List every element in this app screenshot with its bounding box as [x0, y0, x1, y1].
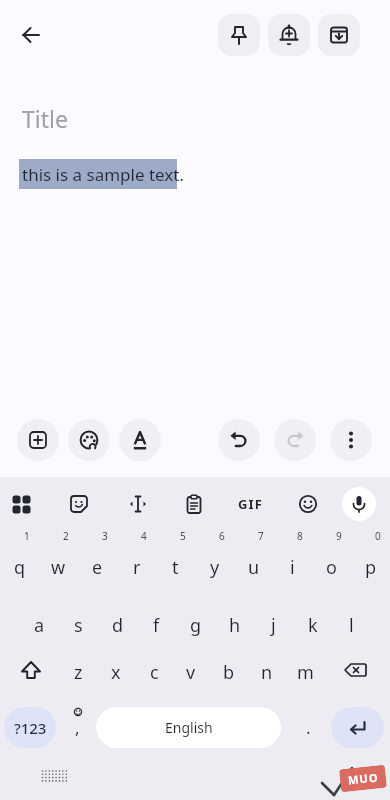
staticText: j	[271, 613, 276, 638]
staticText: 3	[102, 529, 108, 543]
button[interactable]: i	[273, 543, 312, 591]
staticText: v	[186, 660, 196, 685]
button[interactable]	[274, 419, 316, 461]
button[interactable]: d	[98, 601, 137, 649]
staticText: t	[172, 555, 179, 580]
button[interactable]	[0, 482, 43, 526]
staticText: e	[92, 555, 103, 580]
button[interactable]: GIF	[229, 482, 273, 526]
button[interactable]	[331, 707, 384, 748]
staticText: 0	[375, 529, 381, 543]
button[interactable]: a	[20, 601, 59, 649]
button[interactable]	[14, 18, 48, 52]
staticText: 7	[258, 529, 264, 543]
staticText: MUO	[347, 769, 380, 788]
button[interactable]	[68, 419, 110, 461]
button[interactable]: g	[176, 601, 215, 649]
staticText: g	[190, 613, 202, 638]
button[interactable]: m	[286, 648, 324, 696]
button[interactable]	[342, 487, 376, 521]
button[interactable]: q	[0, 543, 39, 591]
button[interactable]: z	[59, 648, 97, 696]
staticText: y	[210, 555, 220, 580]
staticText: English	[165, 718, 213, 737]
staticText: Title	[22, 103, 68, 134]
staticText: o	[326, 555, 337, 580]
staticText: 5	[180, 529, 186, 543]
button[interactable]: t	[156, 543, 195, 591]
staticText: k	[308, 613, 318, 638]
staticText: x	[111, 660, 121, 685]
staticText: r	[133, 555, 141, 580]
staticText: u	[248, 555, 260, 580]
staticText: 1	[24, 529, 30, 543]
button[interactable]: k	[293, 601, 332, 649]
button[interactable]: w	[39, 543, 78, 591]
staticText: 8	[297, 529, 303, 543]
staticText: n	[261, 660, 273, 685]
button[interactable]	[286, 482, 330, 526]
button[interactable]	[58, 702, 96, 752]
button[interactable]	[330, 419, 372, 461]
staticText: b	[223, 660, 235, 685]
staticText: .	[306, 716, 311, 739]
button[interactable]: h	[215, 601, 254, 649]
staticText: ,	[75, 716, 80, 739]
button[interactable]	[17, 419, 59, 461]
button[interactable]: s	[59, 601, 98, 649]
button[interactable]	[332, 648, 378, 696]
button[interactable]	[119, 419, 161, 461]
button[interactable]: l	[332, 601, 371, 649]
staticText: m	[297, 660, 314, 685]
button[interactable]: r	[117, 543, 156, 591]
staticText: GIF	[238, 495, 264, 513]
button[interactable]: ?123	[4, 707, 56, 748]
button[interactable]	[116, 482, 160, 526]
button[interactable]	[8, 648, 54, 696]
staticText: 4	[141, 529, 147, 543]
staticText: this is a sample text.	[22, 163, 184, 186]
button[interactable]: u	[234, 543, 273, 591]
staticText: q	[14, 555, 26, 580]
staticText: s	[74, 613, 83, 638]
staticText: p	[365, 555, 377, 580]
staticText: i	[290, 555, 295, 580]
button[interactable]: p	[351, 543, 390, 591]
button[interactable]	[172, 482, 216, 526]
button[interactable]: o	[312, 543, 351, 591]
button[interactable]: v	[172, 648, 210, 696]
staticText: h	[229, 613, 241, 638]
staticText: 2	[63, 529, 69, 543]
staticText: ?123	[14, 718, 47, 738]
staticText: c	[150, 660, 159, 685]
button[interactable]	[218, 14, 260, 56]
staticText: 6	[219, 529, 225, 543]
button[interactable]: f	[137, 601, 176, 649]
staticText: w	[51, 555, 66, 580]
staticText: a	[34, 613, 45, 638]
button[interactable]: .	[288, 707, 328, 748]
staticText: l	[349, 613, 354, 638]
staticText: f	[153, 613, 160, 638]
button[interactable]	[218, 419, 260, 461]
button[interactable]: c	[135, 648, 173, 696]
button[interactable]: n	[248, 648, 286, 696]
button[interactable]	[57, 482, 101, 526]
button[interactable]: b	[210, 648, 248, 696]
button[interactable]: e	[78, 543, 117, 591]
button[interactable]	[318, 14, 360, 56]
button[interactable]	[268, 14, 310, 56]
button[interactable]: x	[97, 648, 135, 696]
button[interactable]: y	[195, 543, 234, 591]
button[interactable]: j	[254, 601, 293, 649]
button[interactable]: English	[96, 707, 281, 748]
staticText: 9	[336, 529, 342, 543]
staticText: z	[74, 660, 83, 685]
staticText: d	[112, 613, 124, 638]
